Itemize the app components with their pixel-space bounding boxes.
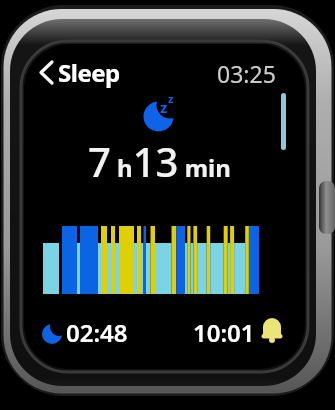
staticText: 02:48 bbox=[66, 316, 128, 349]
button[interactable]: 10:01 bbox=[191, 313, 285, 347]
staticText: 7 h13 min bbox=[88, 134, 231, 188]
staticText: Sleep bbox=[58, 56, 120, 89]
staticText: 03:25 bbox=[217, 58, 276, 89]
staticText: z bbox=[168, 91, 174, 106]
button[interactable]: z bbox=[138, 90, 182, 136]
staticText: z bbox=[160, 97, 168, 117]
button[interactable] bbox=[43, 214, 259, 294]
button[interactable]: Sleep bbox=[36, 56, 120, 90]
button[interactable]: 02:48 bbox=[40, 313, 132, 347]
staticText: 10:01 bbox=[193, 316, 255, 349]
